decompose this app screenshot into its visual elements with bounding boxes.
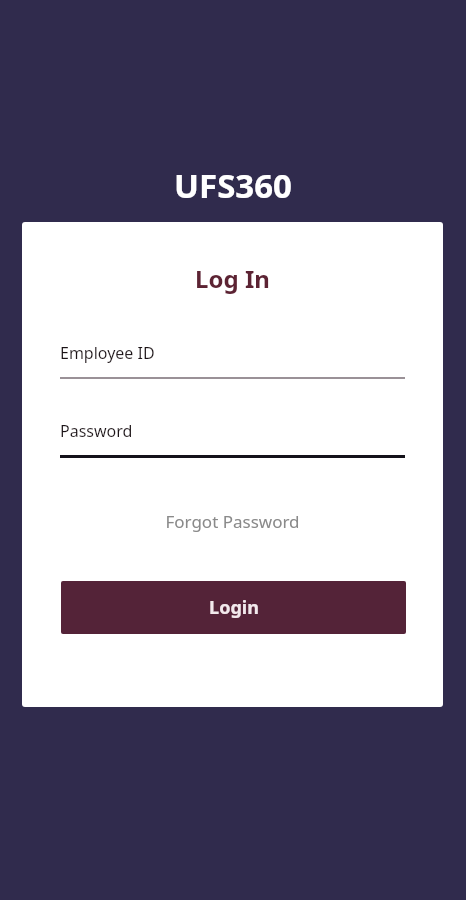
button[interactable]: Employee ID	[60, 342, 405, 379]
staticText: UFS360	[174, 163, 292, 208]
button[interactable]: Password	[60, 420, 405, 458]
staticText: Log In	[195, 262, 270, 295]
button[interactable]: Forgot Password	[22, 505, 443, 537]
staticText: Employee ID	[60, 342, 155, 364]
staticText: Forgot Password	[165, 510, 300, 533]
staticText: Login	[209, 595, 259, 620]
staticText: Password	[60, 420, 133, 442]
button[interactable]: Login	[61, 581, 406, 634]
